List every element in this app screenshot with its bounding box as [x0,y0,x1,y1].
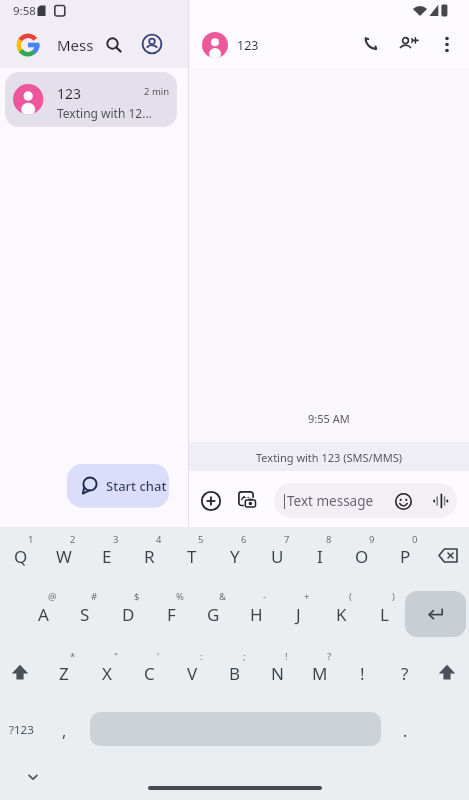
button[interactable]: N [257,658,297,688]
staticText: & [219,590,226,603]
button[interactable]: Z [44,658,84,688]
staticText: - [263,590,267,603]
staticText: 1 [28,533,34,546]
staticText: R [144,545,155,568]
button[interactable]: ?123 [0,717,42,743]
staticText: Start chat [106,477,167,495]
staticText: T [187,545,197,568]
button[interactable]: M [300,658,340,688]
staticText: $ [134,590,140,603]
staticText: ; [243,650,246,663]
staticText: Texting with 123 (SMS/MMS) [256,450,402,465]
staticText: P [400,545,411,568]
staticText: * [70,650,76,663]
button[interactable] [433,493,449,509]
button[interactable]: V [172,658,212,688]
button[interactable] [363,36,379,52]
staticText: ! [285,650,288,663]
button[interactable] [67,464,169,507]
button[interactable]: A [23,599,63,629]
button[interactable] [140,32,164,56]
button[interactable]: P [385,541,425,571]
button[interactable]: F [151,599,191,629]
staticText: # [91,590,98,603]
staticText: @ [48,590,57,603]
button[interactable]: . [390,718,420,744]
button[interactable]: Q [1,541,41,571]
staticText: B [229,662,241,685]
button[interactable] [442,33,452,56]
button[interactable]: U [257,541,297,571]
staticText: K [336,603,347,626]
button[interactable]: R [129,541,169,571]
staticText: Text message [287,492,374,510]
staticText: L [380,603,389,626]
staticText: F [167,603,176,626]
staticText: Y [230,545,240,568]
button[interactable] [405,591,466,637]
staticText: % [176,590,184,603]
staticText: S [80,603,90,626]
button[interactable]: O [342,541,382,571]
button[interactable]: S [65,599,105,629]
button[interactable]: D [108,599,148,629]
button[interactable]: G [193,599,233,629]
button[interactable]: I [300,541,340,571]
staticText: ) [392,590,395,603]
button[interactable] [11,664,29,680]
staticText: 123 [57,84,82,103]
staticText: 123 [237,37,259,54]
button[interactable] [27,773,39,782]
staticText: I [317,545,323,568]
staticText: D [122,603,135,626]
staticText: C [144,662,155,685]
button[interactable]: T [172,541,212,571]
button[interactable] [274,483,457,518]
staticText: ! [360,662,365,685]
staticText: 8 [326,533,332,546]
button[interactable] [398,36,419,53]
staticText: V [187,662,198,685]
staticText: N [271,662,284,685]
staticText: H [250,603,263,626]
button[interactable] [5,72,177,127]
button[interactable]: C [129,658,169,688]
staticText: 0 [412,533,418,546]
staticText: 4 [156,533,162,546]
button[interactable] [438,548,458,563]
button[interactable] [238,491,258,510]
button[interactable] [201,491,221,511]
button[interactable]: W [44,541,84,571]
staticText: W [56,545,72,568]
button[interactable]: ? [385,658,425,688]
staticText: Texting with 12... [57,105,152,121]
staticText: ?123 [9,722,34,738]
button[interactable]: J [278,599,318,629]
button[interactable] [106,37,122,53]
button[interactable]: B [215,658,255,688]
button[interactable] [395,493,412,510]
staticText: 6 [241,533,247,546]
staticText: , [62,720,67,742]
button[interactable]: K [321,599,361,629]
staticText: ( [349,590,352,603]
staticText: Z [59,662,69,685]
staticText: ? [401,662,409,685]
button[interactable]: E [87,541,127,571]
button[interactable]: H [236,599,276,629]
button[interactable]: L [364,599,404,629]
button[interactable] [438,664,456,680]
staticText: 9 [369,533,375,546]
staticText: ' [157,650,160,663]
staticText: : [200,650,203,663]
button[interactable]: Y [215,541,255,571]
staticText: Q [14,545,28,568]
button[interactable]: ! [342,658,382,688]
button[interactable]: , [49,718,79,744]
staticText: + [304,590,310,603]
button[interactable]: X [87,658,127,688]
staticText: 9:55 AM [308,411,350,426]
staticText: E [102,545,112,568]
staticText: 7 [284,533,290,546]
